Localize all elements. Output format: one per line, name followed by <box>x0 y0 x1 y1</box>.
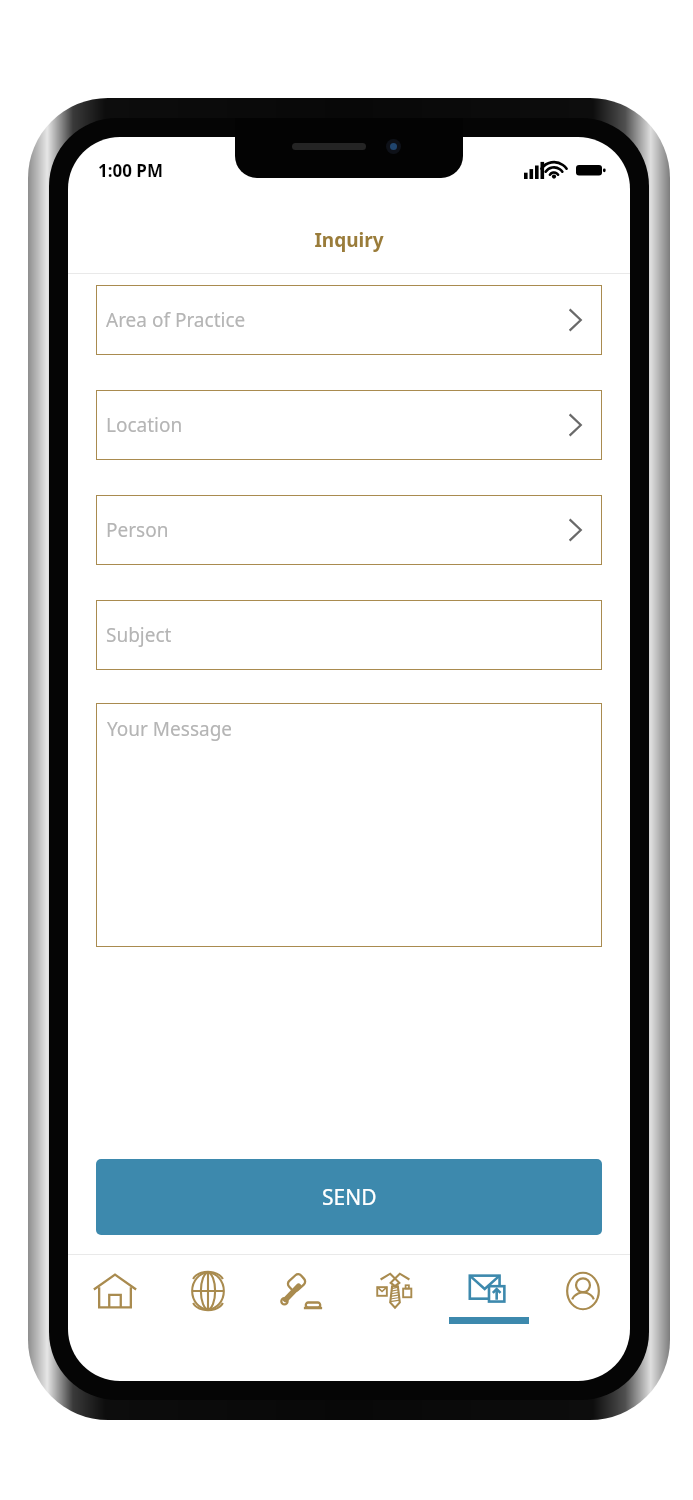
staticText: Your Message <box>107 716 233 742</box>
button[interactable]: Subject <box>96 600 602 670</box>
staticText: Location <box>106 412 183 438</box>
staticText: Inquiry <box>68 227 630 253</box>
button[interactable]: Profile <box>536 1255 630 1331</box>
staticText: Person <box>106 517 169 543</box>
button[interactable]: Cases <box>254 1255 348 1331</box>
button[interactable]: Location <box>96 390 602 460</box>
button[interactable]: Attorneys <box>348 1255 442 1331</box>
button[interactable]: Your Message <box>96 703 602 947</box>
button[interactable]: Home <box>68 1255 161 1331</box>
button[interactable]: SEND <box>96 1159 602 1235</box>
button[interactable]: Inquiry <box>442 1255 536 1331</box>
button[interactable]: Person <box>96 495 602 565</box>
staticText: Subject <box>106 622 172 648</box>
button[interactable]: Global <box>161 1255 254 1331</box>
staticText: SEND <box>322 1183 377 1212</box>
button[interactable]: Area of Practice <box>96 285 602 355</box>
staticText: 1:00 PM <box>98 159 163 182</box>
staticText: Area of Practice <box>106 307 246 333</box>
